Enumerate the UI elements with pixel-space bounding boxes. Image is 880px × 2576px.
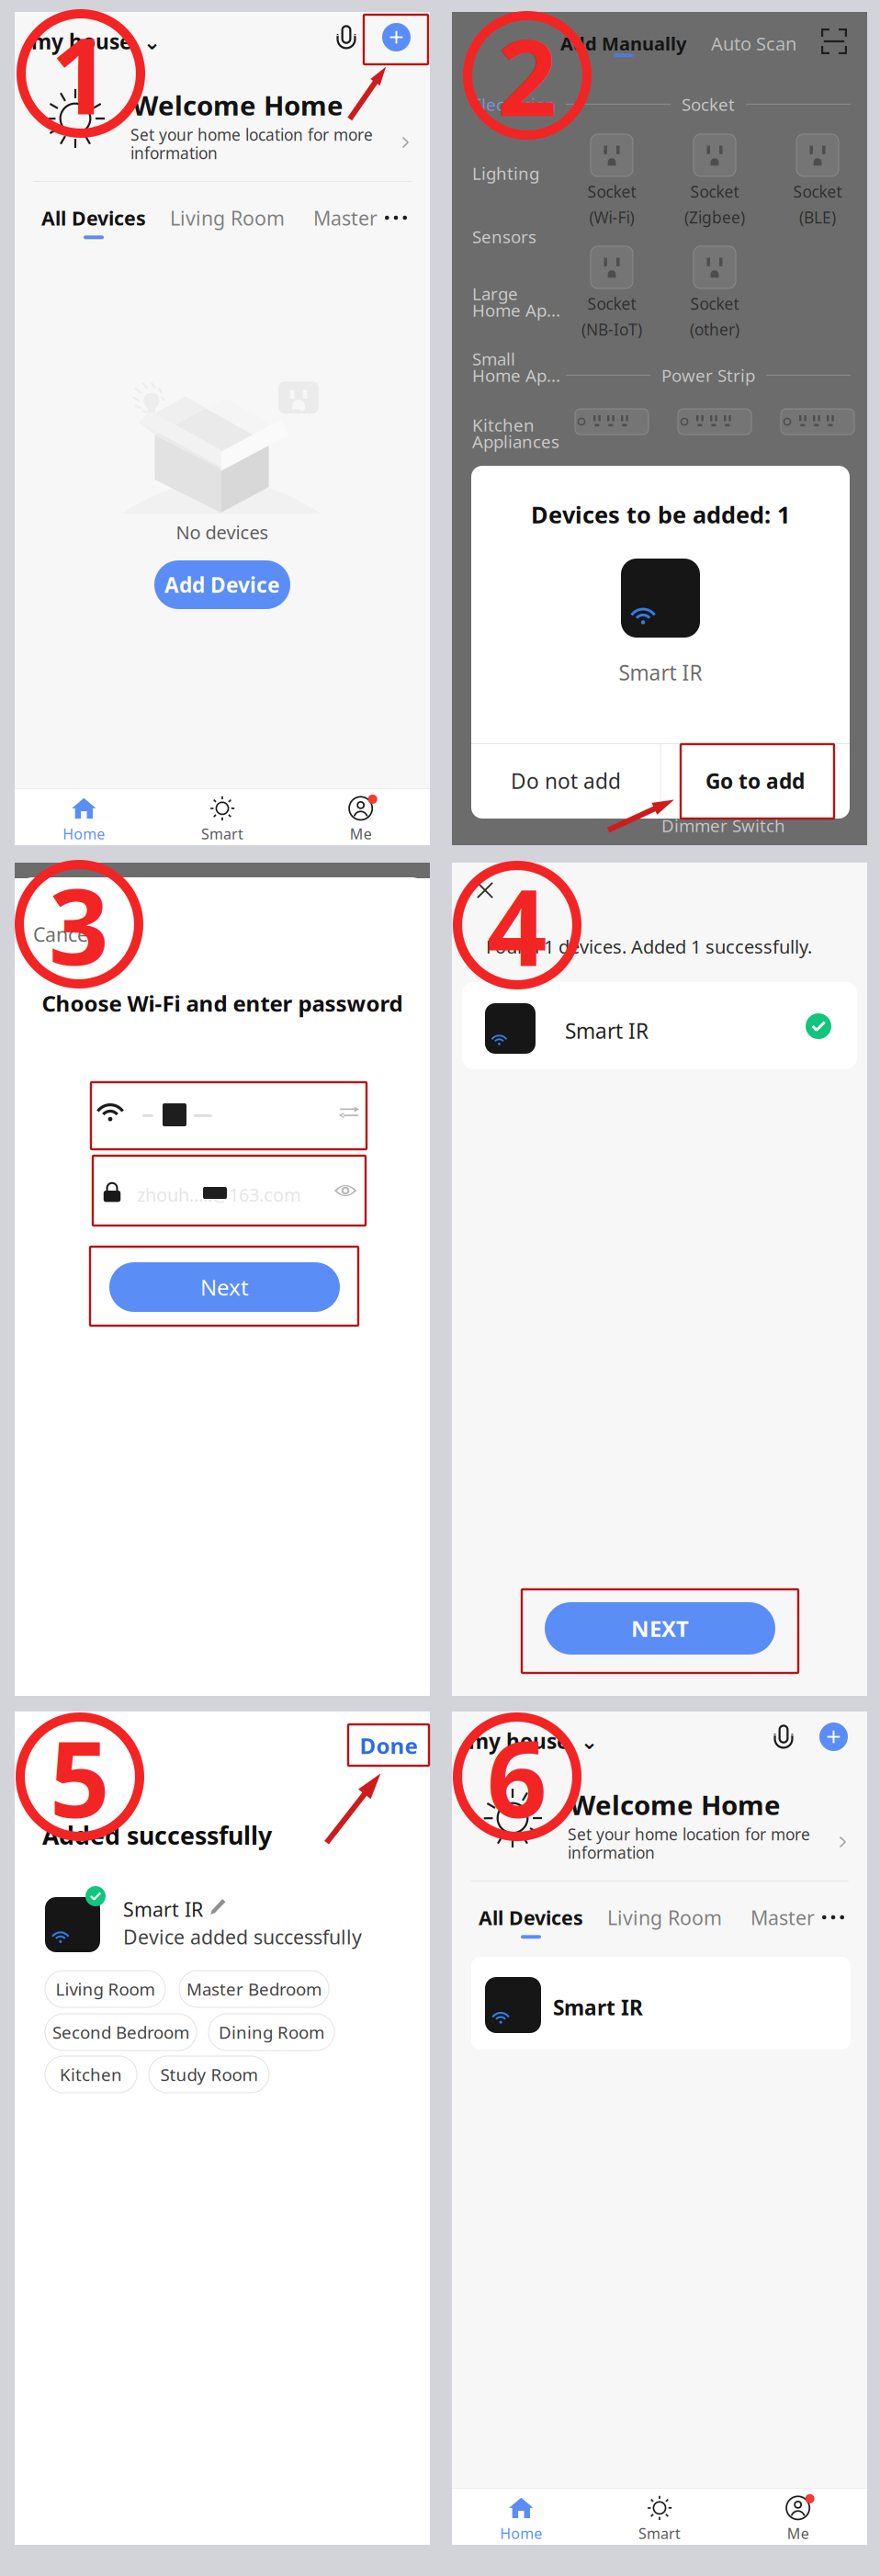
staticText: Cancel [33,921,94,947]
staticText: Add Manually [560,31,686,56]
staticText: (Zigbee) [684,207,745,228]
button[interactable]: Study Room [149,2056,269,2093]
staticText: No devices [176,520,269,544]
button[interactable]: Me [291,796,430,843]
staticText: 1 [51,4,111,143]
button[interactable]: Scan QR code [821,28,847,54]
staticText: (NB-IoT) [581,319,642,340]
button[interactable]: Socket [663,243,766,343]
staticText: (Wi-Fi) [589,207,634,228]
staticText: Set your home location for more [130,124,373,145]
staticText: All Devices [479,1904,583,1930]
staticText: Living Room [56,1978,155,2000]
button[interactable]: Add Device [154,560,290,609]
button[interactable]: Home details [397,134,413,151]
button[interactable]: Socket [560,243,663,343]
staticText: Dimmer Switch [661,814,785,837]
staticText: Master [313,205,378,231]
staticText: Welcome Home [570,1787,781,1823]
button[interactable]: Me [729,2495,867,2543]
staticText: Small [472,347,515,370]
button[interactable]: Smart [153,796,292,843]
button[interactable]: Kitchen [45,2056,137,2093]
staticText: Socket [587,293,636,314]
staticText: Next [200,1272,249,1302]
button[interactable]: All Devices [41,205,146,239]
button[interactable]: Living Room [607,1904,722,1930]
button[interactable]: Next [109,1262,340,1312]
button[interactable]: Second Bedroom [45,2014,197,2051]
button[interactable]: Master [313,205,378,231]
staticText: Devices to be added: 1 [531,499,790,530]
staticText: Smart IR [619,659,702,686]
staticText: 3 [49,854,109,994]
staticText: Sensors [472,225,536,248]
staticText: All Devices [41,205,146,231]
staticText: Home Ap... [472,364,560,387]
staticText: 2 [497,5,558,145]
staticText: Lighting [472,162,539,184]
staticText: Go to add [705,767,805,795]
staticText: Dining Room [219,2021,324,2044]
button[interactable]: Master [750,1904,815,1930]
button[interactable]: More rooms [385,207,407,229]
staticText: (BLE) [799,207,836,228]
button[interactable]: Home [15,796,153,843]
staticText: Done [360,1731,417,1760]
staticText: Socket [690,181,739,202]
staticText: Do not add [511,767,621,795]
button[interactable]: Socket [663,131,766,231]
staticText: information [568,1842,655,1863]
staticText: zhouh.....@163.com [137,1182,301,1207]
staticText: Living Room [170,205,285,231]
staticText: Study Room [160,2063,258,2086]
button[interactable]: Living Room [170,205,285,231]
button[interactable]: Cancel [33,921,94,947]
staticText: Smart IR [565,1017,649,1045]
staticText: Device added successfully [123,1924,362,1950]
staticText: Socket [793,181,842,202]
button[interactable]: Add device [819,1723,848,1751]
button[interactable]: Add device [382,23,411,51]
button[interactable]: Smart [590,2495,729,2543]
button[interactable]: More rooms [822,1906,844,1928]
button[interactable]: Voice assistant [333,24,360,51]
button[interactable]: Home [452,2495,590,2543]
staticText: Socket [690,293,739,314]
staticText: Smart IR [553,1994,643,2021]
button[interactable]: Close [474,879,496,901]
staticText: Smart [638,2524,681,2543]
staticText: NEXT [631,1614,689,1643]
button[interactable]: Voice assistant [770,1723,797,1751]
staticText: information [130,142,218,164]
staticText: Added successfully [42,1819,272,1852]
button[interactable]: NEXT [545,1602,775,1655]
button[interactable]: Dining Room [209,2014,334,2051]
button[interactable]: All Devices [479,1904,583,1939]
staticText: Set your home location for more [568,1824,810,1845]
button[interactable]: Socket [560,131,663,231]
staticText: my house ⌄ [468,1727,598,1755]
button[interactable]: Done [355,1730,423,1761]
staticText: Master [750,1904,815,1930]
staticText: (other) [690,319,739,340]
staticText: Choose Wi-Fi and enter password [42,989,403,1018]
button[interactable]: Living Room [45,1971,165,2007]
button[interactable]: Smart IR [471,1957,851,2050]
staticText: Me [350,824,372,843]
staticText: Master Bedroom [186,1978,322,2000]
staticText: Smart [201,824,243,843]
staticText: Kitchen [60,2063,122,2086]
staticText: 5 [50,1707,110,1847]
staticText: Smart IR [123,1896,203,1922]
staticText: Living Room [607,1904,722,1930]
staticText: Home [500,2524,542,2543]
button[interactable]: Master Bedroom [179,1971,329,2007]
button[interactable]: Socket [766,131,869,231]
staticText: 4 [487,855,547,995]
button[interactable]: Home details [834,1834,851,1850]
staticText: Socket [682,93,735,116]
staticText: Add Device [164,571,280,599]
button[interactable]: Go to add [660,743,850,819]
button[interactable]: Do not add [471,743,660,819]
